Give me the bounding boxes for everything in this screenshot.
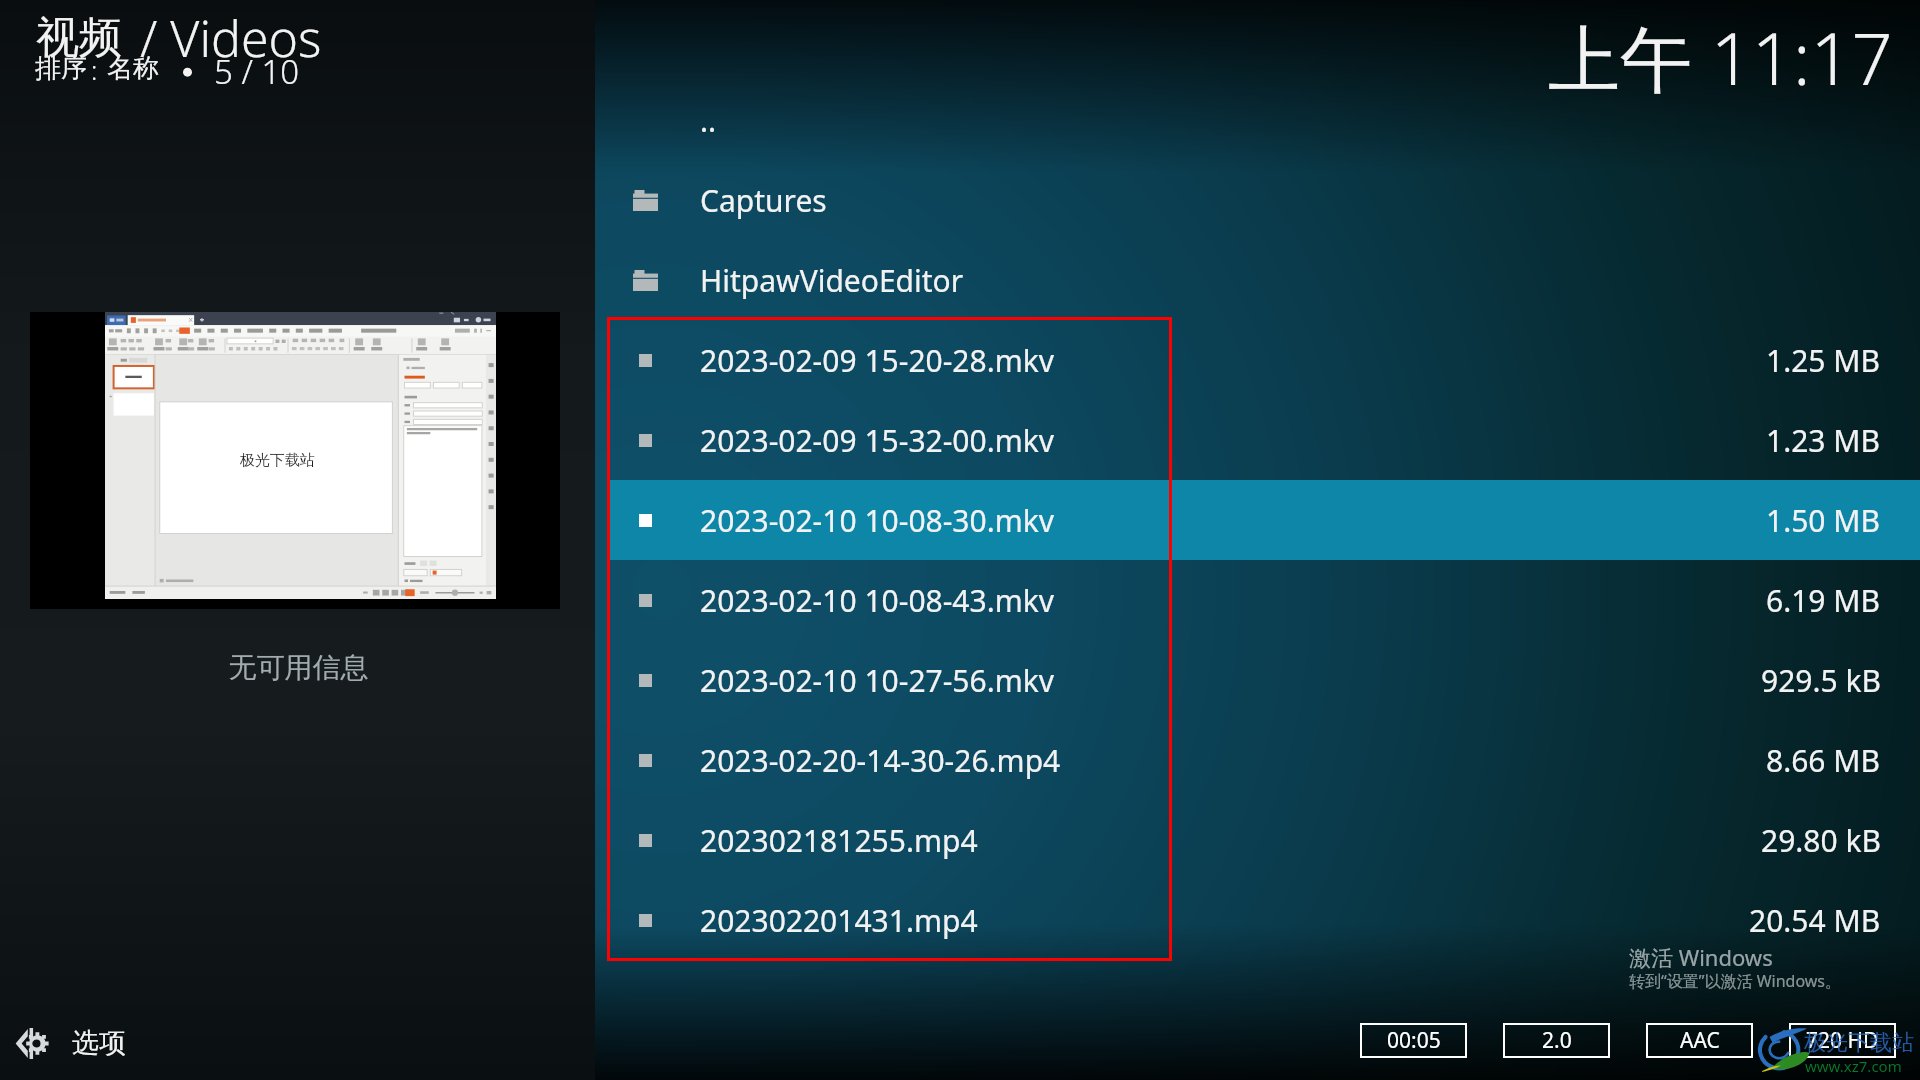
staticText: 202302201431.mp4 (700, 900, 978, 941)
staticText: Captures (700, 180, 827, 221)
button[interactable]: .. (607, 80, 1920, 160)
staticText: 极光下载站 (240, 451, 315, 470)
staticText: 202302181255.mp4 (700, 820, 978, 861)
staticText: 激活 Windows (1629, 942, 1773, 972)
staticText: 6.19 MB (1766, 580, 1881, 621)
button[interactable]: Captures (607, 160, 1920, 240)
button[interactable]: 2023-02-09 15-20-28.mkv (607, 320, 1920, 400)
button[interactable]: 2023-02-10 10-27-56.mkv (607, 640, 1920, 720)
staticText: 2023-02-20-14-30-26.mp4 (700, 740, 1061, 781)
staticText: 2023-02-10 10-27-56.mkv (700, 660, 1055, 701)
staticText: 转到“设置”以激活 Windows。 (1629, 970, 1841, 992)
staticText: .. (700, 100, 717, 141)
button[interactable]: 2023-02-20-14-30-26.mp4 (607, 720, 1920, 800)
staticText: www.xz7.com (1805, 1056, 1902, 1076)
staticText: 上午 11:17 (1548, 8, 1893, 106)
button[interactable]: Options menu (10, 1023, 136, 1063)
button[interactable]: 2023-02-10 10-08-43.mkv (607, 560, 1920, 640)
staticText: 选项 (72, 1026, 126, 1060)
staticText: 2.0 (1542, 1026, 1572, 1055)
button[interactable]: HitpawVideoEditor (607, 240, 1920, 320)
staticText: 2023-02-10 10-08-43.mkv (700, 580, 1055, 621)
staticText: 5 / 10 (214, 49, 300, 94)
staticText: 8.66 MB (1766, 740, 1881, 781)
button[interactable]: 720 HD (1789, 1023, 1896, 1058)
staticText: 929.5 kB (1761, 660, 1881, 701)
staticText: 29.80 kB (1761, 820, 1881, 861)
staticText: 2023-02-10 10-08-30.mkv (700, 500, 1055, 541)
staticText: : (91, 52, 98, 87)
button[interactable]: 202302201431.mp4 (607, 880, 1920, 960)
staticText: 720 HD (1806, 1026, 1879, 1055)
button[interactable]: 2.0 (1503, 1023, 1610, 1058)
button[interactable]: 202302181255.mp4 (607, 800, 1920, 880)
staticText: AAC (1680, 1026, 1720, 1055)
staticText: 1.23 MB (1766, 420, 1881, 461)
staticText: 极光下载站 (1804, 1029, 1914, 1057)
staticText: / Videos (140, 4, 322, 72)
staticText: 1.50 MB (1766, 500, 1881, 541)
staticText: 1.25 MB (1766, 340, 1881, 381)
staticText: HitpawVideoEditor (700, 260, 964, 301)
staticText: 2023-02-09 15-20-28.mkv (700, 340, 1055, 381)
other: Options menu (15, 1027, 47, 1060)
button[interactable]: AAC (1646, 1023, 1753, 1058)
staticText: 2023-02-09 15-32-00.mkv (700, 420, 1055, 461)
staticText: 00:05 (1387, 1026, 1441, 1055)
staticText: 排序 (35, 52, 87, 85)
staticText: 20.54 MB (1749, 900, 1881, 941)
staticText: 无可用信息 (1, 650, 596, 685)
button[interactable]: 2023-02-10 10-08-30.mkv (607, 480, 1920, 560)
staticText: 视频 (36, 11, 122, 65)
staticText: 名称 (107, 52, 159, 85)
button[interactable]: 2023-02-09 15-32-00.mkv (607, 400, 1920, 480)
button[interactable]: 00:05 (1360, 1023, 1467, 1058)
